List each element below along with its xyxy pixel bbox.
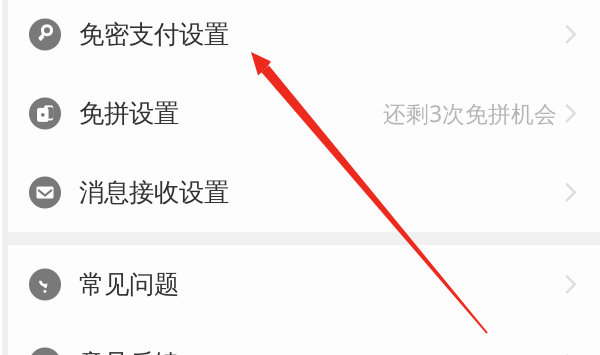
staticText: 意见反馈 — [79, 348, 179, 355]
staticText: 消息接收设置 — [79, 177, 229, 208]
button[interactable]: 免密支付设置 — [0, 0, 600, 74]
button[interactable]: 免拼设置 — [0, 74, 600, 153]
button[interactable]: 常见问题 — [0, 245, 600, 324]
staticText: 常见问题 — [79, 269, 179, 300]
button[interactable]: 消息接收设置 — [0, 153, 600, 232]
staticText: 免拼设置 — [79, 98, 179, 129]
staticText: 还剩3次免拼机会 — [383, 98, 557, 128]
staticText: 免密支付设置 — [79, 19, 229, 50]
button[interactable]: 意见反馈 — [0, 324, 600, 355]
